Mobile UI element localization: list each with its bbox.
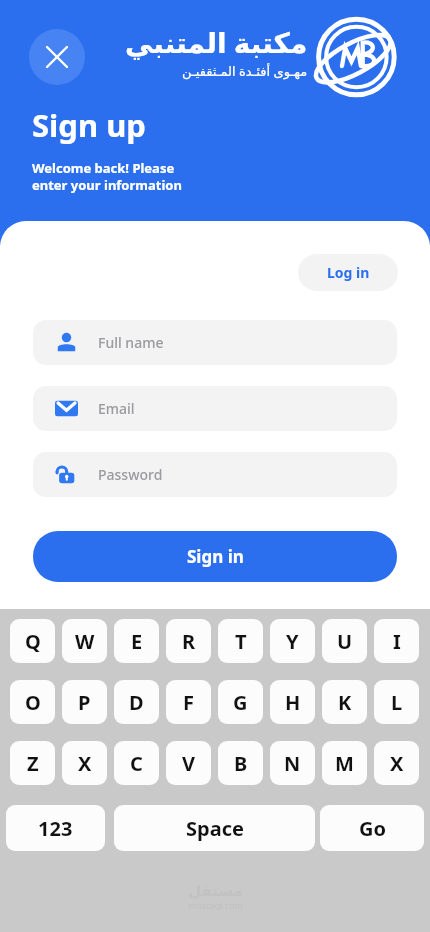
staticText: K [338, 689, 352, 716]
button[interactable]: Go [320, 805, 424, 851]
button[interactable]: Password [33, 452, 397, 497]
button[interactable]: K [322, 680, 367, 724]
button[interactable]: Email [33, 386, 397, 431]
button[interactable]: M [322, 741, 367, 785]
staticText: Full name [98, 333, 164, 352]
staticText: B [234, 750, 248, 777]
staticText: Log in [327, 263, 370, 282]
staticText: مهـوى أفئـدة المـثقفيـن [182, 62, 308, 80]
button[interactable]: Z [10, 741, 55, 785]
button[interactable]: Space [114, 805, 315, 851]
staticText: R [182, 628, 196, 655]
button[interactable]: Close [29, 29, 85, 85]
button[interactable]: E [114, 619, 159, 663]
staticText: E [131, 628, 143, 655]
staticText: D [129, 689, 144, 716]
staticText: U [337, 628, 353, 655]
button[interactable]: T [218, 619, 263, 663]
button[interactable]: Q [10, 619, 55, 663]
button[interactable]: N [270, 741, 315, 785]
button[interactable]: X [62, 741, 107, 785]
staticText: C [130, 750, 143, 777]
button[interactable]: R [166, 619, 211, 663]
button[interactable]: Y [270, 619, 315, 663]
button[interactable]: Full name [33, 320, 397, 365]
staticText: N [284, 750, 301, 777]
staticText: O [25, 689, 41, 716]
staticText: W [75, 628, 95, 655]
staticText: 123 [38, 815, 73, 842]
button[interactable]: P [62, 680, 107, 724]
staticText: Space [186, 815, 244, 842]
staticText: Password [98, 465, 163, 484]
button[interactable]: X [374, 741, 419, 785]
staticText: G [233, 689, 248, 716]
button[interactable]: C [114, 741, 159, 785]
staticText: Q [25, 628, 41, 655]
button[interactable]: H [270, 680, 315, 724]
staticText: H [285, 689, 301, 716]
button[interactable]: V [166, 741, 211, 785]
button[interactable]: Log in [298, 254, 398, 291]
staticText: Sign in [187, 545, 244, 568]
button[interactable]: U [322, 619, 367, 663]
button[interactable]: F [166, 680, 211, 724]
staticText: P [78, 689, 91, 716]
button[interactable]: O [10, 680, 55, 724]
staticText: T [235, 628, 247, 655]
staticText: X [390, 750, 404, 777]
staticText: M [335, 750, 354, 777]
staticText: X [78, 750, 92, 777]
staticText: Email [98, 399, 135, 418]
button[interactable]: Sign in [33, 531, 397, 582]
staticText: مكتبة المتنبي [125, 23, 308, 61]
staticText: Y [286, 628, 299, 655]
button[interactable]: G [218, 680, 263, 724]
button[interactable]: D [114, 680, 159, 724]
button[interactable]: W [62, 619, 107, 663]
button[interactable]: 123 [6, 805, 105, 851]
staticText: L [391, 689, 403, 716]
staticText: Go [359, 815, 386, 842]
button[interactable]: I [374, 619, 419, 663]
staticText: Z [27, 750, 39, 777]
staticText: I [393, 628, 401, 655]
button[interactable]: B [218, 741, 263, 785]
staticText: Sign up [32, 104, 146, 146]
staticText: V [182, 750, 195, 777]
staticText: F [183, 689, 194, 716]
staticText: Welcome back! Please enter your informat… [32, 159, 182, 194]
button[interactable]: L [374, 680, 419, 724]
